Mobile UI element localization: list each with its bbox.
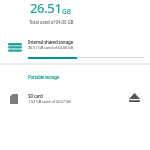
- staticText: Portable storage: [28, 74, 60, 80]
- staticText: 26.51: [30, 0, 62, 17]
- staticText: Internal shared storage: [28, 39, 73, 45]
- button[interactable]: Internal shared storage: [0, 36, 150, 63]
- button[interactable]: SD card: [0, 86, 150, 110]
- staticText: 26.51 GB used of 64.00 GB: [28, 45, 73, 50]
- staticText: Total used of 64.00 GB: [29, 19, 74, 25]
- staticText: 1.52 GB used of 32.07 GB: [28, 99, 71, 104]
- staticText: GB: [62, 7, 71, 16]
- button[interactable]: [125, 89, 145, 107]
- staticText: SD card: [28, 93, 43, 99]
